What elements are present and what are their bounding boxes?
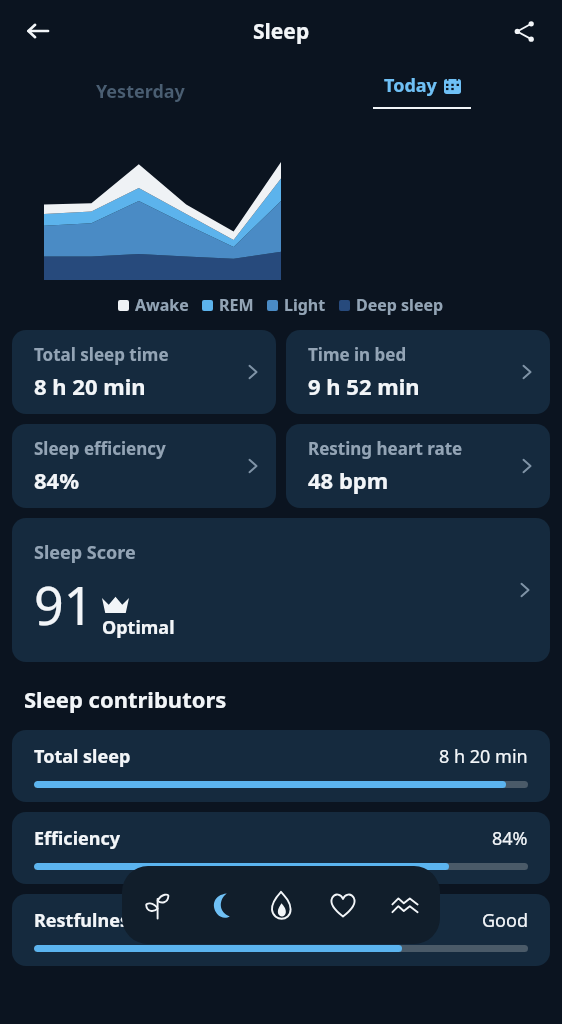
staticText: Sleep bbox=[253, 17, 310, 46]
staticText: 8 h 20 min bbox=[439, 744, 528, 769]
staticText: 84% bbox=[492, 826, 528, 851]
staticText: Restfulness bbox=[34, 908, 138, 933]
button[interactable]: Restfulness bbox=[12, 894, 550, 966]
staticText: Sleep efficiency bbox=[34, 437, 166, 460]
button[interactable]: Yesterday bbox=[0, 62, 281, 120]
staticText: 9 h 52 min bbox=[308, 371, 420, 401]
staticText: 91 bbox=[34, 569, 94, 640]
button[interactable]: Efficiency bbox=[12, 812, 550, 884]
button[interactable]: Trends bbox=[378, 878, 432, 932]
staticText: Light bbox=[284, 294, 326, 316]
staticText: Resting heart rate bbox=[308, 437, 463, 460]
staticText: Total sleep bbox=[34, 744, 131, 769]
button[interactable]: Total sleep time bbox=[12, 330, 276, 414]
staticText: Sleep Score bbox=[34, 540, 136, 565]
staticText: Today bbox=[384, 73, 437, 98]
button[interactable]: Back bbox=[14, 7, 62, 55]
button[interactable]: Share bbox=[500, 7, 548, 55]
staticText: Awake bbox=[135, 294, 189, 316]
button[interactable]: Total sleep bbox=[12, 730, 550, 802]
staticText: Yesterday bbox=[96, 79, 185, 104]
staticText: 48 bpm bbox=[308, 465, 389, 495]
button[interactable]: Heart bbox=[316, 878, 370, 932]
button[interactable]: Today bbox=[281, 62, 562, 120]
staticText: Optimal bbox=[102, 615, 175, 640]
staticText: Total sleep time bbox=[34, 343, 169, 366]
button[interactable]: Sleep Score bbox=[12, 518, 550, 662]
button[interactable]: Time in bed bbox=[286, 330, 550, 414]
staticText: Efficiency bbox=[34, 826, 121, 851]
button[interactable]: Calories bbox=[254, 878, 308, 932]
staticText: Sleep contributors bbox=[24, 684, 227, 714]
staticText: Good bbox=[482, 908, 528, 933]
staticText: 84% bbox=[34, 465, 80, 495]
button[interactable]: Activity bbox=[130, 878, 184, 932]
button[interactable]: Sleep bbox=[192, 878, 246, 932]
button[interactable]: Sleep efficiency bbox=[12, 424, 276, 508]
staticText: Time in bed bbox=[308, 343, 407, 366]
staticText: REM bbox=[219, 294, 254, 316]
button[interactable]: Resting heart rate bbox=[286, 424, 550, 508]
staticText: Deep sleep bbox=[356, 294, 444, 316]
staticText: 8 h 20 min bbox=[34, 371, 146, 401]
